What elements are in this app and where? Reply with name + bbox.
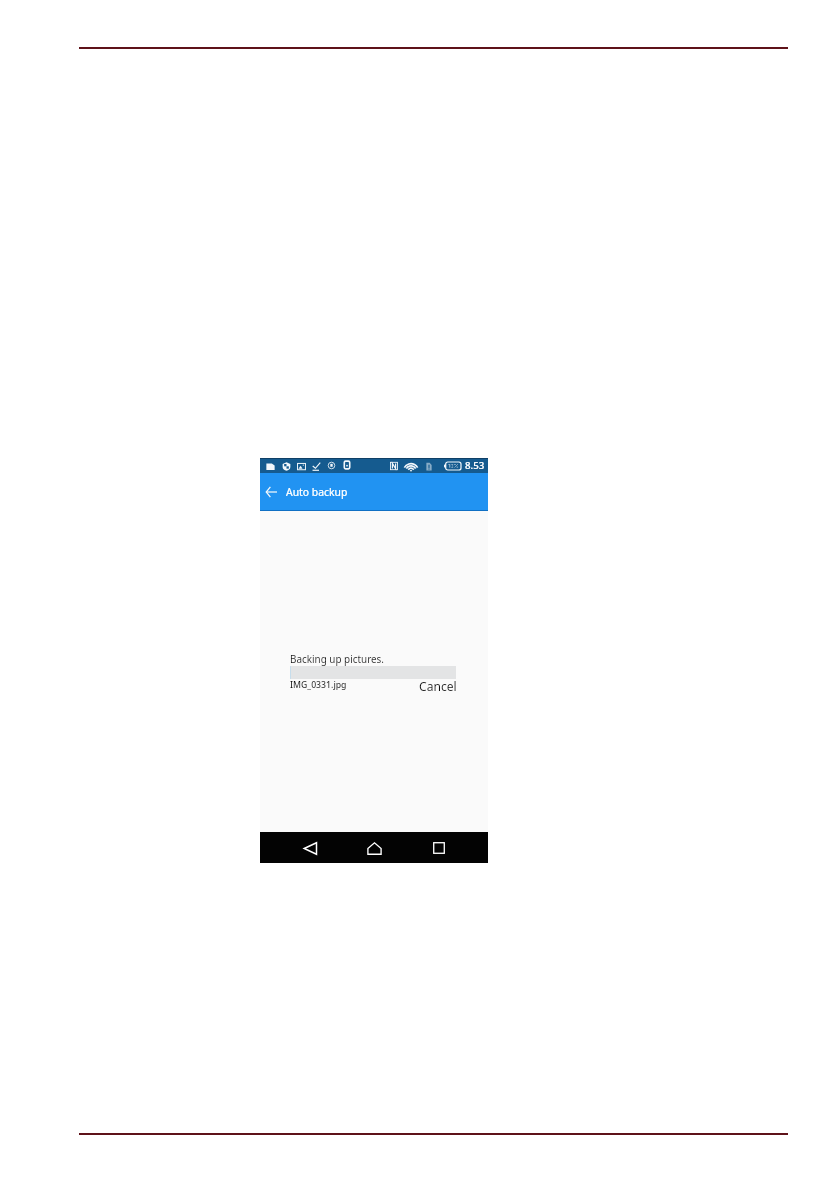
button[interactable]: Back xyxy=(256,477,286,507)
staticText: IMG_0331.jpg xyxy=(290,679,347,691)
staticText: Cancel xyxy=(419,678,457,694)
button[interactable]: Home xyxy=(359,833,389,863)
button[interactable]: Back xyxy=(295,833,325,863)
button[interactable]: Cancel xyxy=(415,675,459,691)
staticText: Backing up pictures. xyxy=(290,652,385,665)
button[interactable]: Recents xyxy=(424,833,454,863)
staticText: Auto backup xyxy=(286,485,348,499)
staticText: 8.53 xyxy=(465,459,485,472)
